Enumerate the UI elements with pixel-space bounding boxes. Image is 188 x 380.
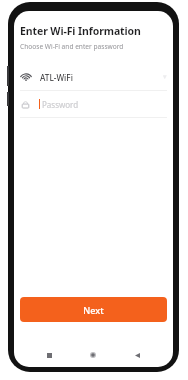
- button[interactable]: Recent apps: [41, 347, 57, 363]
- button[interactable]: Back: [129, 347, 145, 363]
- staticText: Next: [83, 304, 104, 316]
- button[interactable]: Home: [85, 347, 101, 363]
- staticText: Password: [42, 99, 79, 110]
- staticText: Choose Wi-Fi and enter password: [20, 42, 124, 51]
- staticText: Enter Wi-Fi Information: [20, 24, 141, 38]
- staticText: ATL-WiFi: [40, 72, 73, 83]
- staticText: ▾: [163, 73, 167, 81]
- button[interactable]: ATL-WiFi: [14, 64, 173, 90]
- button[interactable]: Next: [20, 297, 167, 322]
- button[interactable]: Password: [14, 91, 173, 117]
